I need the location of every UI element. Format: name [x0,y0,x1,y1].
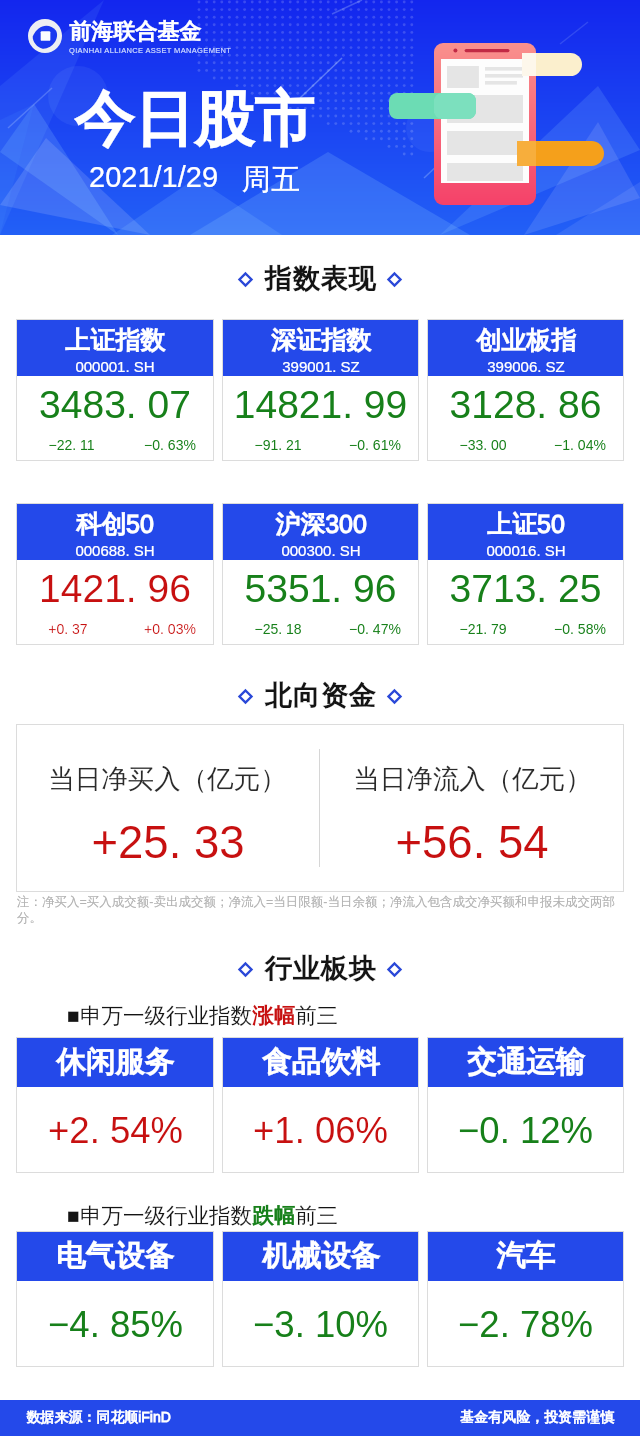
button[interactable]: 汽车 [427,1231,624,1367]
button[interactable]: 上证50 [427,503,624,645]
staticText: 2021/1/29 [89,161,219,193]
staticText: 3128. 86 [427,383,624,427]
staticText: 1421. 96 [16,567,214,611]
staticText: −0. 63% [144,437,196,453]
staticText: 000300. SH [281,542,361,559]
staticText: 行业板块 [264,952,376,986]
staticText: ■申万一级行业指数跌幅前三 [67,1202,338,1229]
staticText: −2. 78% [458,1304,593,1345]
staticText: 000016. SH [486,542,566,559]
staticText: −22. 11 [48,437,95,453]
staticText: 休闲服务 [56,1044,174,1081]
staticText: 399001. SZ [282,358,360,375]
staticText: −21. 79 [459,621,507,637]
staticText: −0. 58% [554,621,606,637]
staticText: −3. 10% [253,1304,388,1345]
staticText: +2. 54% [48,1110,183,1151]
button[interactable]: 当日净买入（亿元） [16,724,624,892]
staticText: 3713. 25 [427,567,624,611]
button[interactable]: 电气设备 [16,1231,214,1367]
staticText: 399006. SZ [487,358,565,375]
staticText: 5351. 96 [222,567,419,611]
staticText: 北向资金 [264,679,376,713]
staticText: 深证指数 [271,325,371,356]
staticText: 科创50 [76,509,154,540]
staticText: +25. 33 [91,817,245,868]
button[interactable]: 沪深300 [222,503,419,645]
button[interactable]: 前海联合基金 [28,18,232,54]
staticText: 000001. SH [75,358,155,375]
staticText: 基金有风险，投资需谨慎 [460,1409,614,1427]
staticText: 000688. SH [75,542,155,559]
staticText: 3483. 07 [16,383,214,427]
staticText: −0. 47% [349,621,401,637]
staticText: 机械设备 [262,1238,380,1275]
staticText: 周五 [242,161,300,198]
staticText: 前海联合基金 [69,18,201,46]
staticText: +56. 54 [395,817,549,868]
staticText: 电气设备 [56,1238,174,1275]
staticText: −33. 00 [459,437,507,453]
staticText: QIANHAI ALLIANCE ASSET MANAGEMENT [69,46,232,54]
staticText: 指数表现 [264,262,376,296]
staticText: 14821. 99 [222,383,419,427]
button[interactable]: 科创50 [16,503,214,645]
staticText: 数据来源：同花顺iFinD [26,1409,171,1427]
staticText: 创业板指 [476,325,576,356]
button[interactable]: 食品饮料 [222,1037,419,1173]
staticText: 交通运输 [467,1044,585,1081]
staticText: −4. 85% [48,1304,183,1345]
staticText: −0. 12% [458,1110,593,1151]
button[interactable]: 创业板指 [427,319,624,461]
staticText: 上证50 [487,509,565,540]
staticText: 当日净流入（亿元） [353,762,592,795]
staticText: −25. 18 [254,621,302,637]
staticText: +1. 06% [253,1110,388,1151]
button[interactable]: 深证指数 [222,319,419,461]
staticText: −0. 61% [349,437,401,453]
button[interactable]: 上证指数 [16,319,214,461]
staticText: 食品饮料 [262,1044,380,1081]
staticText: −1. 04% [554,437,606,453]
staticText: 注：净买入=买入成交额-卖出成交额；净流入=当日限额-当日余额；净流入包含成交净… [17,894,626,926]
staticText: 上证指数 [65,325,165,356]
button[interactable]: 交通运输 [427,1037,624,1173]
staticText: ■申万一级行业指数涨幅前三 [67,1002,338,1029]
button[interactable]: 休闲服务 [16,1037,214,1173]
staticText: 当日净买入（亿元） [48,762,287,795]
staticText: +0. 03% [144,621,196,637]
staticText: −91. 21 [254,437,302,453]
staticText: 沪深300 [275,509,367,540]
staticText: 汽车 [496,1238,555,1275]
button[interactable]: 机械设备 [222,1231,419,1367]
staticText: 今日股市 [74,82,314,158]
staticText: +0. 37 [48,621,88,637]
